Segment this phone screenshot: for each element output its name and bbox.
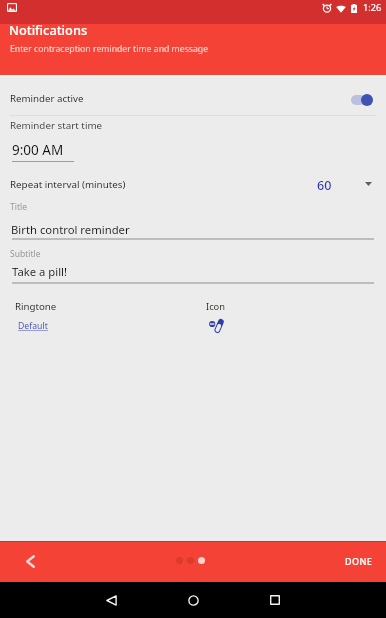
staticText: Enter contraception reminder time and me… [10, 43, 209, 55]
button[interactable]: Birth control reminder [0, 215, 386, 241]
staticText: Default [18, 320, 48, 332]
staticText: Ringtone [15, 300, 57, 313]
staticText: Title [10, 201, 27, 213]
staticText: 60 [317, 177, 332, 194]
staticText: Subtitle [10, 248, 41, 260]
button[interactable]: Default [18, 320, 48, 332]
staticText: Repeat interval (minutes) [10, 178, 126, 191]
staticText: Reminder active [10, 92, 84, 105]
button[interactable]: Choose icon [208, 319, 224, 333]
staticText: DONE [345, 555, 373, 567]
staticText: Icon [206, 300, 225, 313]
button[interactable]: Take a pill! [0, 259, 386, 283]
button[interactable]: Home [177, 584, 209, 616]
staticText: Take a pill! [12, 264, 68, 279]
button[interactable]: DONE [338, 548, 380, 574]
staticText: 1:26 [363, 1, 382, 14]
button[interactable]: Repeat interval (minutes) [0, 172, 386, 196]
button[interactable]: Back [95, 584, 127, 616]
button[interactable]: Previous page [16, 547, 44, 575]
button[interactable]: Recent apps [259, 584, 291, 616]
button[interactable]: Reminder active [0, 84, 386, 114]
staticText: Reminder start time [10, 119, 103, 132]
button[interactable]: Reminder start time [8, 116, 128, 166]
staticText: Notifications [9, 21, 88, 38]
staticText: 9:00 AM [12, 141, 64, 159]
staticText: Birth control reminder [11, 222, 130, 237]
